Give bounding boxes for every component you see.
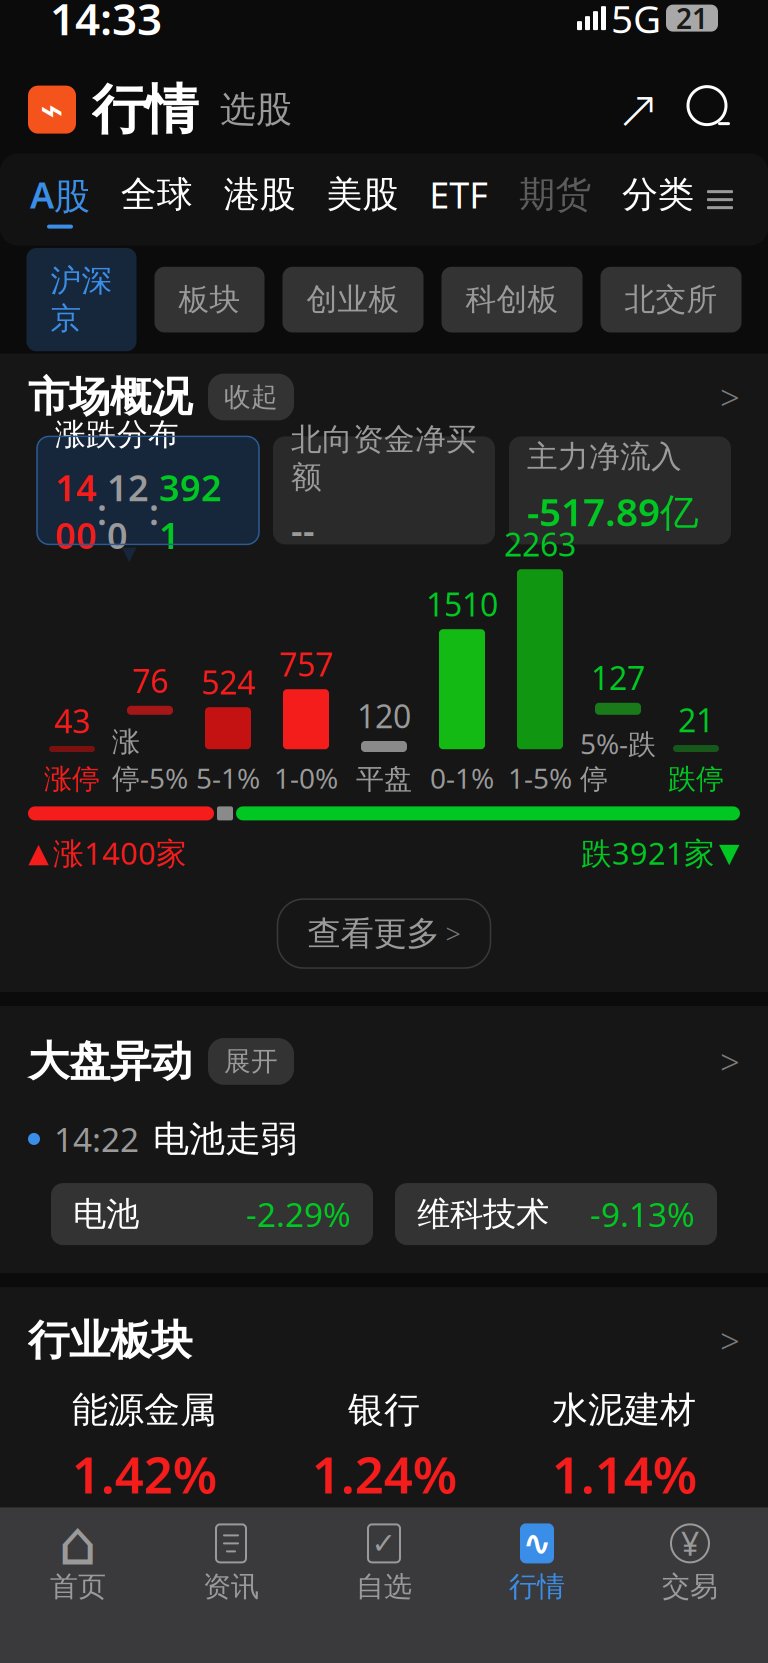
staticText: ▲: [28, 838, 49, 868]
button[interactable]: ✓: [307, 1521, 460, 1604]
button[interactable]: A股: [26, 171, 94, 229]
staticText: 1.24%: [311, 1440, 456, 1507]
staticText: 2263: [504, 523, 576, 565]
staticText: 14:33: [50, 0, 162, 47]
button[interactable]: 水泥建材: [504, 1388, 744, 1507]
button[interactable]: 选股: [198, 79, 292, 140]
staticText: ⌁: [40, 87, 64, 132]
staticText: 21: [676, 0, 708, 37]
staticText: 能源金属: [72, 1388, 216, 1432]
button[interactable]: ∿: [460, 1521, 613, 1604]
button[interactable]: 科创板: [441, 267, 582, 332]
button[interactable]: 板块: [154, 267, 264, 332]
button[interactable]: 期货: [515, 172, 595, 227]
staticText: 北交所: [624, 281, 717, 318]
button[interactable]: 维科技术: [395, 1183, 717, 1245]
button[interactable]: 分享: [612, 84, 664, 136]
staticText: ↗: [615, 79, 660, 140]
staticText: ▾: [122, 536, 137, 569]
staticText: 主力净流入: [527, 438, 682, 476]
staticText: 交易: [662, 1569, 718, 1604]
staticText: -517.89亿: [527, 486, 699, 537]
staticText: >: [445, 916, 460, 951]
button[interactable]: 分类: [618, 172, 698, 227]
staticText: 757: [279, 643, 333, 685]
staticText: ¥: [681, 1522, 699, 1565]
staticText: 21: [678, 698, 714, 741]
staticText: 120: [107, 463, 149, 559]
staticText: 1.14%: [551, 1440, 696, 1507]
staticText: 跌3921家: [581, 832, 715, 873]
button[interactable]: 市场概况: [0, 372, 768, 422]
staticText: 北向资金净买额: [291, 421, 477, 496]
staticText: 首页: [50, 1569, 106, 1604]
staticText: 全球: [121, 172, 193, 217]
staticText: 涨停-5%: [112, 725, 188, 796]
staticText: 524: [201, 661, 255, 703]
staticText: :: [97, 487, 107, 535]
button[interactable]: 大盘异动: [0, 1036, 768, 1087]
staticText: 1.42%: [71, 1440, 216, 1507]
button[interactable]: 搜索: [682, 81, 740, 139]
staticText: 行情: [92, 77, 198, 142]
staticText: --: [291, 506, 315, 554]
button[interactable]: ¥: [613, 1521, 766, 1604]
staticText: 1400: [55, 463, 97, 559]
button[interactable]: 电池: [51, 1183, 373, 1245]
button[interactable]: 查看更多: [277, 899, 490, 968]
button[interactable]: 港股: [220, 172, 300, 227]
button[interactable]: 涨跌分布: [37, 436, 259, 544]
button[interactable]: ETF: [425, 171, 492, 228]
staticText: 涨停: [44, 762, 100, 796]
button[interactable]: 银行: [264, 1388, 504, 1507]
staticText: 维科技术: [417, 1194, 549, 1234]
staticText: 创业板: [306, 281, 399, 318]
staticText: 电池: [73, 1194, 139, 1234]
staticText: 涨1400家: [53, 832, 187, 873]
button[interactable]: 更多分类: [698, 178, 742, 222]
staticText: 1510: [426, 583, 498, 625]
button[interactable]: 能源金属: [24, 1388, 264, 1507]
button[interactable]: 沪深京: [26, 248, 136, 351]
staticText: 选股: [220, 87, 292, 132]
staticText: ▼: [719, 838, 740, 868]
staticText: 期货: [519, 172, 591, 217]
staticText: 板块: [178, 281, 240, 318]
staticText: ⌂: [58, 1509, 97, 1578]
staticText: 科创板: [465, 281, 558, 318]
staticText: 120: [357, 694, 411, 737]
staticText: >: [720, 1317, 740, 1363]
staticText: A股: [30, 171, 90, 219]
staticText: ✓: [371, 1527, 396, 1560]
staticText: >: [720, 374, 740, 420]
staticText: 美股: [326, 172, 398, 217]
button[interactable]: 北交所: [600, 267, 741, 332]
staticText: 港股: [224, 172, 296, 217]
staticText: 0-1%: [430, 759, 494, 796]
staticText: 5G: [611, 0, 661, 44]
staticText: -9.13%: [590, 1192, 695, 1236]
button[interactable]: ⌂: [1, 1521, 154, 1604]
button[interactable]: 主力净流入: [509, 436, 731, 544]
button[interactable]: 资讯: [154, 1521, 307, 1604]
staticText: 行情: [509, 1569, 565, 1604]
staticText: 14:22: [54, 1117, 139, 1161]
button[interactable]: 北向资金净买额: [273, 436, 495, 544]
staticText: 5%-跌停: [580, 725, 656, 796]
button[interactable]: 美股: [322, 172, 402, 227]
staticText: ETF: [429, 171, 488, 218]
button[interactable]: 创业板: [282, 267, 423, 332]
staticText: :: [149, 487, 159, 535]
staticText: 平盘: [356, 762, 412, 796]
staticText: -2.29%: [246, 1192, 351, 1236]
staticText: 1-0%: [274, 759, 338, 796]
staticText: 127: [591, 656, 645, 699]
button[interactable]: 行业板块: [0, 1315, 768, 1366]
button[interactable]: 14:22: [0, 1117, 768, 1161]
staticText: ∿: [522, 1524, 551, 1563]
staticText: 展开: [224, 1045, 278, 1078]
staticText: >: [720, 1038, 740, 1084]
button[interactable]: 全球: [117, 172, 197, 227]
staticText: 3921: [159, 463, 222, 559]
staticText: 水泥建材: [552, 1388, 696, 1432]
